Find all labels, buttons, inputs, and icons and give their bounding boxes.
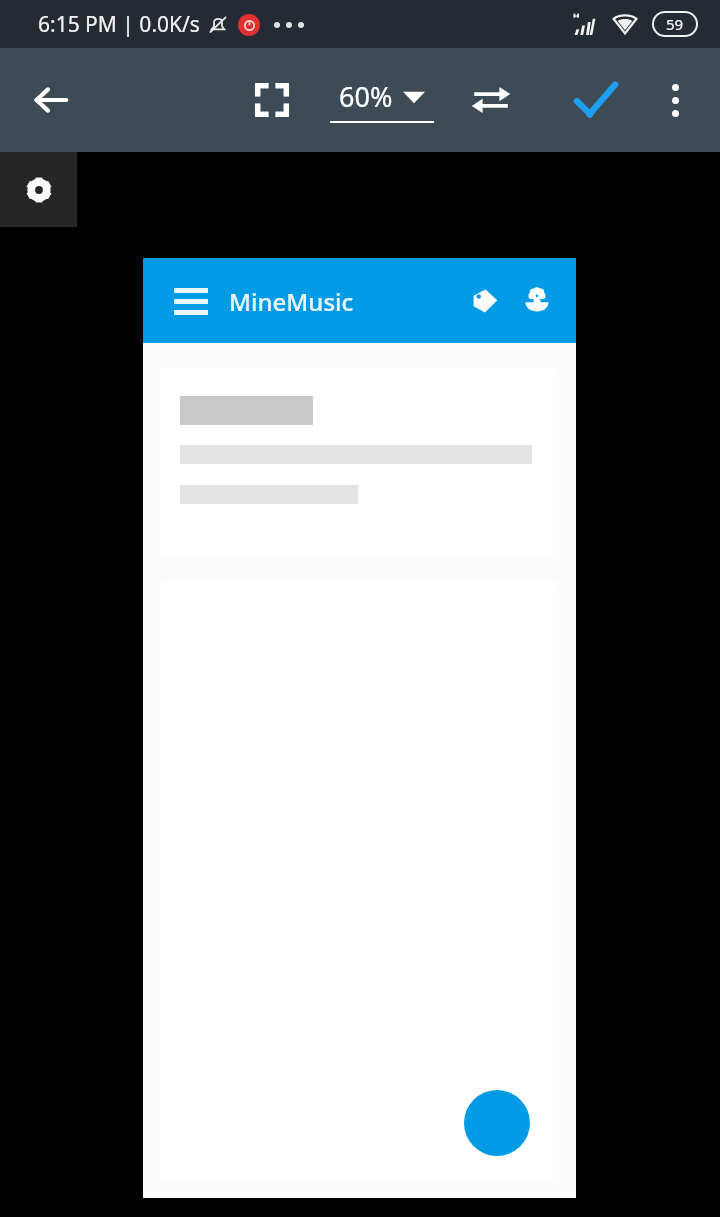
- button[interactable]: Done: [558, 62, 634, 138]
- button[interactable]: Swap: [455, 64, 527, 136]
- button[interactable]: [160, 367, 559, 557]
- button[interactable]: More options: [644, 69, 706, 131]
- staticText: MineMusic: [229, 285, 354, 318]
- button[interactable]: Settings: [0, 152, 77, 227]
- staticText: 6:15 PM | 0.0K/s: [38, 10, 200, 39]
- button[interactable]: Fit to screen: [240, 68, 304, 132]
- button[interactable]: Library: [516, 280, 558, 322]
- button[interactable]: 60%: [328, 65, 436, 135]
- button[interactable]: Tags: [464, 280, 506, 322]
- button[interactable]: Add: [464, 1090, 530, 1156]
- button[interactable]: Menu: [169, 279, 213, 323]
- staticText: 59: [666, 14, 684, 34]
- staticText: 60%: [339, 78, 393, 115]
- button[interactable]: Back: [18, 67, 84, 133]
